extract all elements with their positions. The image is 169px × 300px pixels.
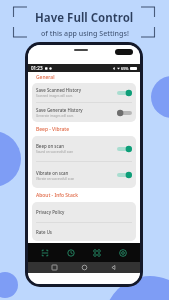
staticText: Beep on scan	[36, 143, 64, 149]
button[interactable]: History	[62, 244, 80, 262]
staticText: 01:23	[31, 65, 43, 71]
staticText: of this app using Settings!	[41, 28, 129, 38]
button[interactable]: Save Scanned History	[32, 83, 136, 102]
staticText: Save Generate History	[36, 107, 83, 113]
button[interactable]: QR code	[88, 244, 106, 262]
staticText: Scanned images will save.	[36, 94, 73, 98]
button[interactable]: Scan	[36, 244, 54, 262]
staticText: Sound on successfull scan	[36, 150, 74, 154]
button[interactable]: Settings	[114, 244, 132, 262]
staticText: 65%	[121, 66, 129, 71]
staticText: Vibrate on successfull scan	[36, 177, 75, 181]
staticText: Rate Us	[36, 229, 53, 235]
staticText: Have Full Control	[35, 10, 134, 26]
button[interactable]	[117, 171, 132, 179]
button[interactable]: Save Generate History	[32, 103, 136, 122]
staticText: Privacy Policy	[36, 209, 65, 215]
staticText: Vibrate on scan	[36, 170, 69, 176]
button[interactable]: Beep on scan	[32, 136, 136, 161]
button[interactable]	[117, 145, 132, 153]
staticText: Generate images will save.	[36, 114, 75, 118]
staticText: General	[36, 74, 55, 81]
button[interactable]	[117, 89, 132, 97]
staticText: Save Scanned History	[36, 87, 82, 93]
staticText: About - Info Stack	[36, 192, 78, 199]
staticText: Beep - Vibrate	[36, 126, 70, 133]
button[interactable]	[117, 109, 132, 117]
button[interactable]: Privacy Policy	[32, 202, 136, 222]
button[interactable]: Rate Us	[32, 223, 136, 241]
button[interactable]: Vibrate on scan	[32, 162, 136, 188]
